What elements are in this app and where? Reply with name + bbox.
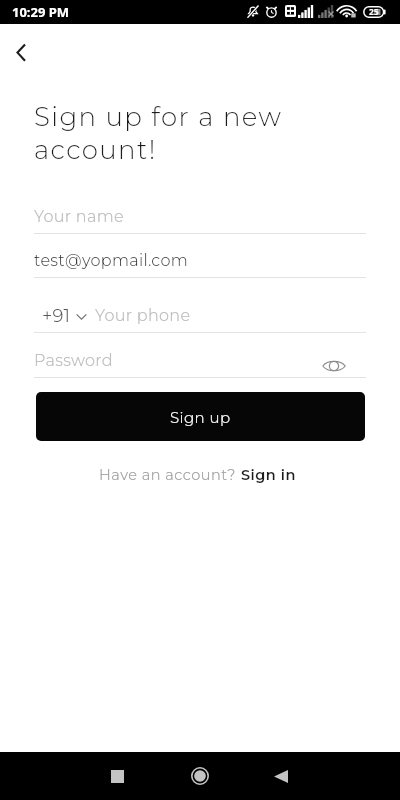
staticText: +91 — [42, 305, 71, 327]
button[interactable]: Show password — [318, 350, 350, 382]
button[interactable]: Back — [0, 26, 48, 70]
button[interactable]: test@yopmail.com — [34, 244, 366, 277]
staticText: 25 — [369, 6, 379, 18]
button[interactable]: Password — [34, 344, 366, 377]
button[interactable]: Back — [263, 758, 299, 794]
staticText: Sign up for a new account! — [34, 101, 374, 166]
button[interactable]: Sign in — [241, 466, 296, 484]
staticText: Have an account? — [99, 466, 241, 484]
staticText: Your name — [34, 207, 124, 227]
staticText: 10:29 PM — [12, 3, 70, 21]
button[interactable]: Recent apps — [99, 758, 135, 794]
staticText: Your phone — [95, 306, 191, 326]
button[interactable]: +91 — [34, 299, 366, 332]
button[interactable]: Home — [182, 758, 218, 794]
button[interactable]: +91 — [42, 305, 87, 327]
staticText: Password — [34, 351, 113, 371]
staticText: Sign up — [170, 408, 231, 426]
button[interactable]: Sign up — [36, 392, 365, 441]
staticText: Sign in — [241, 466, 296, 484]
button[interactable]: Your name — [34, 200, 366, 233]
staticText: test@yopmail.com — [34, 251, 188, 271]
